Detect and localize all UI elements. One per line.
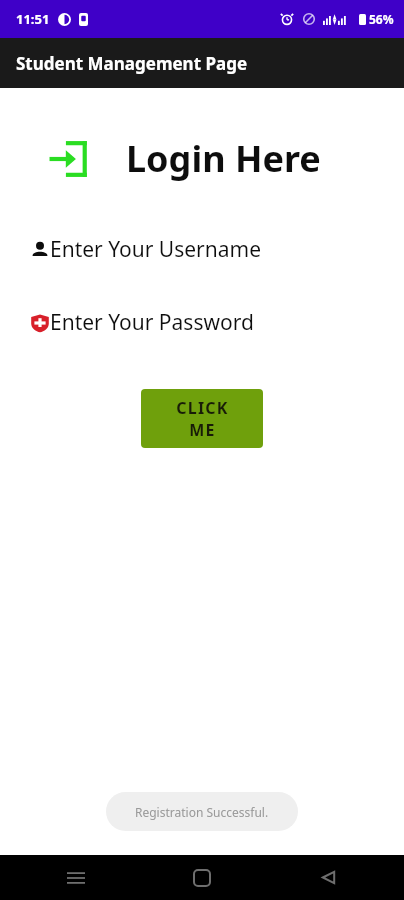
staticText: Enter Your Password <box>50 308 254 337</box>
staticText: Student Management Page <box>16 52 248 75</box>
button[interactable]: Enter Your Password <box>0 308 404 337</box>
button[interactable]: Home <box>152 855 252 900</box>
button[interactable]: Recent apps <box>26 855 126 900</box>
staticText: 56% <box>369 11 394 27</box>
staticText: 11:51 <box>16 10 50 28</box>
staticText: Login Here <box>126 134 321 183</box>
staticText: CLICK ME <box>176 397 229 441</box>
button[interactable]: Enter Your Username <box>0 235 404 264</box>
button[interactable]: CLICK ME <box>141 389 263 448</box>
staticText: Enter Your Username <box>50 235 262 264</box>
button[interactable]: Back <box>278 855 378 900</box>
staticText: Registration Successful. <box>135 804 269 820</box>
